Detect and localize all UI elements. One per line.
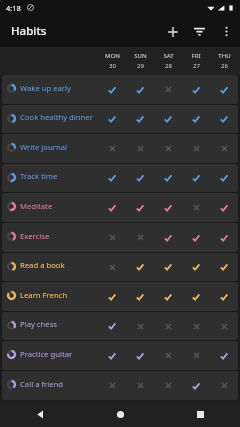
button[interactable] — [182, 341, 210, 370]
button[interactable] — [182, 282, 210, 311]
staticText: Habits — [11, 23, 47, 39]
staticText: MON — [105, 52, 120, 60]
button[interactable] — [210, 105, 238, 133]
button[interactable] — [2, 282, 238, 311]
button[interactable] — [126, 223, 154, 252]
button[interactable] — [126, 75, 154, 104]
button[interactable] — [126, 253, 154, 281]
staticText: 29 — [137, 62, 144, 70]
button[interactable] — [98, 134, 126, 163]
button[interactable] — [126, 105, 154, 133]
button[interactable] — [210, 341, 238, 370]
button[interactable] — [2, 312, 238, 340]
button[interactable] — [98, 282, 126, 311]
button[interactable] — [182, 253, 210, 281]
button[interactable] — [154, 223, 182, 252]
button[interactable] — [2, 193, 238, 222]
button[interactable] — [2, 105, 238, 133]
button[interactable] — [182, 164, 210, 192]
button[interactable] — [210, 371, 238, 400]
staticText: SUN — [134, 52, 147, 60]
button[interactable] — [154, 134, 182, 163]
button[interactable] — [98, 371, 126, 400]
button[interactable] — [182, 105, 210, 133]
button[interactable] — [2, 341, 238, 370]
button[interactable] — [126, 341, 154, 370]
staticText: FRI — [191, 52, 201, 60]
button[interactable] — [2, 371, 238, 400]
button[interactable]: Add habit — [159, 18, 186, 45]
staticText: Call a friend — [20, 379, 64, 389]
button[interactable] — [154, 105, 182, 133]
button[interactable] — [98, 341, 126, 370]
button[interactable] — [98, 312, 126, 340]
button[interactable] — [210, 75, 238, 104]
staticText: Play chess — [20, 319, 58, 329]
button[interactable]: Back — [0, 401, 80, 427]
button[interactable] — [154, 282, 182, 311]
staticText: 26 — [221, 62, 228, 70]
staticText: 27 — [193, 62, 200, 70]
button[interactable] — [182, 312, 210, 340]
button[interactable] — [98, 253, 126, 281]
button[interactable] — [182, 223, 210, 252]
staticText: Practice guitar — [20, 349, 73, 359]
button[interactable] — [182, 134, 210, 163]
button[interactable] — [2, 134, 238, 163]
button[interactable] — [126, 134, 154, 163]
button[interactable] — [154, 164, 182, 192]
staticText: SAT — [163, 52, 174, 60]
button[interactable] — [210, 164, 238, 192]
staticText: Cook healthy dinner — [20, 112, 93, 122]
button[interactable] — [2, 223, 238, 252]
button[interactable] — [98, 105, 126, 133]
button[interactable] — [154, 253, 182, 281]
button[interactable] — [182, 371, 210, 400]
button[interactable] — [210, 223, 238, 252]
button[interactable] — [210, 193, 238, 222]
button[interactable] — [126, 282, 154, 311]
button[interactable] — [126, 193, 154, 222]
button[interactable]: Recent apps — [160, 401, 240, 427]
button[interactable] — [2, 75, 238, 104]
button[interactable] — [126, 164, 154, 192]
button[interactable] — [126, 312, 154, 340]
button[interactable] — [182, 193, 210, 222]
staticText: 30 — [109, 62, 116, 70]
staticText: Learn French — [20, 290, 68, 300]
button[interactable] — [210, 312, 238, 340]
button[interactable] — [2, 253, 238, 281]
button[interactable]: More options — [213, 18, 240, 45]
button[interactable]: Home — [80, 401, 160, 427]
staticText: Meditate — [20, 201, 53, 211]
staticText: Exercise — [20, 231, 50, 241]
button[interactable] — [210, 282, 238, 311]
button[interactable] — [98, 193, 126, 222]
button[interactable] — [154, 75, 182, 104]
button[interactable] — [98, 164, 126, 192]
staticText: Wake up early — [20, 83, 71, 93]
button[interactable]: Filter — [186, 18, 213, 45]
staticText: Read a book — [20, 260, 65, 270]
button[interactable] — [126, 371, 154, 400]
button[interactable] — [2, 164, 238, 192]
button[interactable] — [154, 341, 182, 370]
button[interactable] — [154, 193, 182, 222]
button[interactable] — [210, 253, 238, 281]
button[interactable] — [154, 312, 182, 340]
button[interactable] — [154, 371, 182, 400]
staticText: 28 — [165, 62, 172, 70]
staticText: Write journal — [20, 142, 67, 152]
button[interactable] — [210, 134, 238, 163]
staticText: 4:18 — [6, 3, 21, 13]
button[interactable] — [98, 75, 126, 104]
staticText: THU — [218, 52, 231, 60]
button[interactable] — [182, 75, 210, 104]
staticText: Track time — [20, 171, 58, 181]
button[interactable] — [98, 223, 126, 252]
